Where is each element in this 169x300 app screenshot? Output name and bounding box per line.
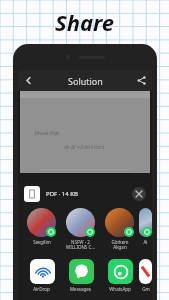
staticText: Prove that bbox=[35, 130, 60, 137]
button[interactable]: Sevgilim bbox=[22, 208, 61, 245]
button[interactable]: Close bbox=[132, 187, 146, 201]
staticText: Sevgilim bbox=[33, 239, 51, 245]
button[interactable]: NSFW - 2 MILLIONS C... bbox=[61, 208, 100, 251]
staticText: Ai bbox=[143, 239, 148, 245]
button[interactable]: Görkem Akgan bbox=[100, 208, 139, 251]
staticText: NSFW - 2 MILLIONS C... bbox=[66, 239, 95, 251]
staticText: Solution bbox=[68, 75, 103, 87]
staticText: Görkem Akgan bbox=[111, 239, 129, 251]
button[interactable]: Back bbox=[18, 70, 39, 91]
staticText: Share bbox=[55, 7, 115, 37]
button[interactable]: Gm bbox=[139, 258, 152, 292]
staticText: AirDrop bbox=[33, 286, 50, 292]
button[interactable]: Share bbox=[131, 70, 152, 91]
staticText: Gm bbox=[142, 286, 150, 292]
button[interactable]: Messages bbox=[61, 258, 100, 292]
button[interactable]: AirDrop bbox=[22, 258, 61, 292]
staticText: sin 2x = 2 sin x cos x bbox=[64, 144, 105, 150]
staticText: PDF · 14 KB bbox=[46, 190, 78, 198]
staticText: Messages bbox=[70, 286, 91, 292]
staticText: WhatsApp bbox=[109, 286, 131, 292]
button[interactable]: WhatsApp bbox=[100, 258, 139, 292]
button[interactable]: Ai bbox=[139, 208, 152, 245]
